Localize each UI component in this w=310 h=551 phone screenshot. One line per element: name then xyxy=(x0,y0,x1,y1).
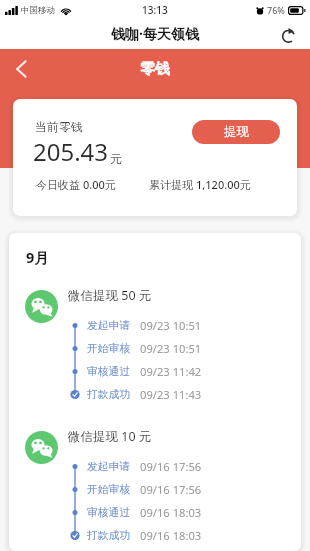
staticText: 09/16 17:56 xyxy=(140,459,202,474)
staticText: 零钱 xyxy=(140,60,170,79)
staticText: 205.43 xyxy=(33,135,109,168)
staticText: 中国移动 xyxy=(21,5,55,16)
staticText: 钱咖·每天领钱 xyxy=(111,24,199,43)
staticText: 微信提现 50 元 xyxy=(68,287,152,304)
staticText: 当前零钱 xyxy=(35,119,83,134)
staticText: 09/23 10:51 xyxy=(140,341,202,356)
staticText: 9月 xyxy=(26,247,49,267)
staticText: 发起申请 xyxy=(87,460,139,474)
button[interactable]: 提现 xyxy=(192,120,280,144)
staticText: 打款成功 xyxy=(87,529,139,543)
staticText: 1,120.00 xyxy=(196,177,240,192)
button[interactable]: Back xyxy=(9,59,33,83)
staticText: 微信提现 10 元 xyxy=(68,428,152,445)
staticText: 09/16 18:03 xyxy=(140,528,202,543)
staticText: 提现 xyxy=(224,124,249,140)
staticText: 元 xyxy=(240,178,251,192)
staticText: 元 xyxy=(105,178,116,192)
staticText: 09/23 11:43 xyxy=(140,387,202,402)
staticText: 审核通过 xyxy=(87,506,139,520)
staticText: 审核通过 xyxy=(87,365,139,379)
staticText: 开始审核 xyxy=(87,483,139,497)
staticText: 累计提现 xyxy=(149,177,196,192)
button[interactable]: Refresh xyxy=(277,24,299,46)
staticText: 打款成功 xyxy=(87,388,139,402)
staticText: 发起申请 xyxy=(87,319,139,333)
staticText: 09/23 11:42 xyxy=(140,364,202,379)
button[interactable]: 微信提现 10 元 xyxy=(25,426,301,547)
staticText: 09/16 18:03 xyxy=(140,505,202,520)
staticText: 0.00 xyxy=(83,177,105,192)
staticText: 13:13 xyxy=(142,3,168,17)
staticText: 元 xyxy=(110,152,122,166)
staticText: 76% xyxy=(267,4,285,16)
staticText: 09/16 17:56 xyxy=(140,482,202,497)
button[interactable]: 微信提现 50 元 xyxy=(25,285,301,406)
staticText: 09/23 10:51 xyxy=(140,318,202,333)
staticText: 今日收益 xyxy=(36,177,83,192)
staticText: 开始审核 xyxy=(87,342,139,356)
